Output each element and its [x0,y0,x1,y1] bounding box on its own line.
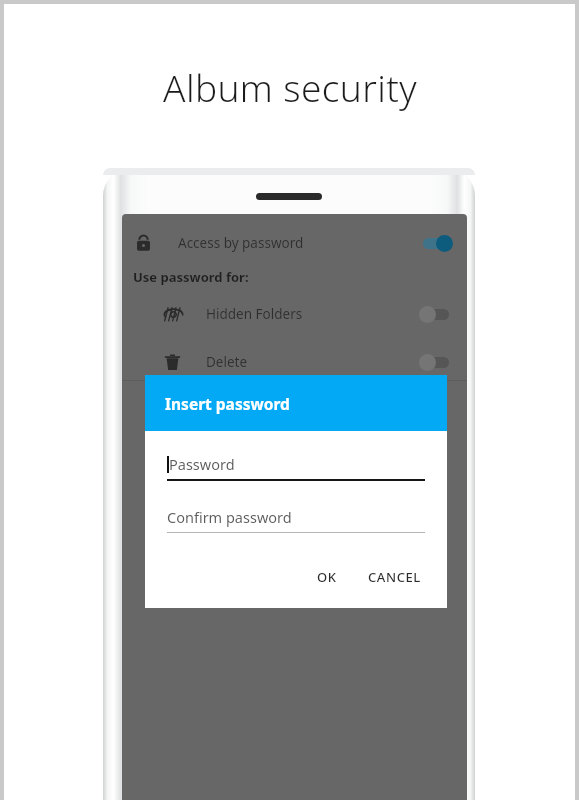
button[interactable]: Delete [122,340,467,384]
staticText: Password [169,454,235,474]
staticText: Use password for: [133,268,249,286]
staticText: CANCEL [368,568,421,586]
button[interactable]: Switch on [419,232,453,254]
staticText: OK [317,568,337,586]
staticText: Delete [206,353,248,371]
staticText: Confirm password [167,507,292,527]
staticText: Access by password [178,234,304,252]
button[interactable]: CANCEL [364,562,425,592]
button[interactable]: Access by password [122,221,467,265]
button[interactable]: Switch off [419,303,453,325]
staticText: Insert password [165,393,290,414]
button[interactable]: Password [167,454,425,481]
button[interactable]: Hidden Folders [122,292,467,336]
staticText: Album security [163,62,417,112]
staticText: Hidden Folders [206,305,303,323]
button[interactable]: Confirm password [167,507,425,533]
button[interactable]: Switch off [419,351,453,373]
button[interactable]: OK [307,562,347,592]
